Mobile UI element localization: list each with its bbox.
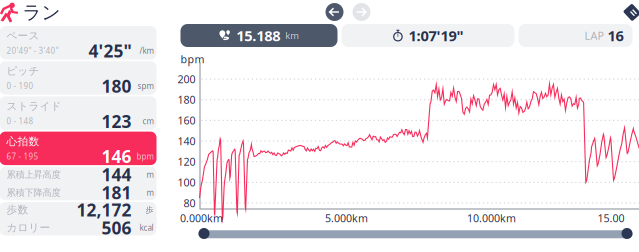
staticText: km — [285, 29, 299, 42]
staticText: 146 — [101, 145, 131, 168]
staticText: 100 — [177, 175, 195, 189]
staticText: 12,172 — [76, 198, 131, 221]
button[interactable]: LAP — [518, 24, 632, 47]
button[interactable]: Previous activity — [325, 3, 343, 21]
staticText: 累積下降高度 — [6, 187, 60, 198]
staticText: 0 - 148 — [6, 116, 33, 126]
staticText: 歩数 — [6, 203, 28, 216]
staticText: 180 — [101, 74, 131, 97]
button[interactable]: ストライド — [0, 96, 156, 130]
staticText: LAP — [584, 28, 603, 43]
staticText: ペース — [6, 29, 39, 42]
staticText: 15.00 — [597, 211, 624, 225]
staticText: ピッチ — [6, 64, 39, 77]
staticText: bpm — [136, 151, 153, 162]
button[interactable]: ペース — [0, 26, 156, 59]
button[interactable]: 歩数 — [0, 202, 156, 235]
staticText: 140 — [177, 134, 195, 148]
staticText: 4'25" — [88, 39, 131, 62]
staticText: kcal — [139, 222, 153, 233]
button[interactable]: 1:07'19" — [341, 24, 514, 47]
staticText: 123 — [101, 110, 131, 133]
staticText: bpm — [180, 52, 204, 66]
staticText: 心拍数 — [6, 135, 39, 148]
staticText: ラン — [22, 1, 60, 24]
button[interactable]: Next activity — [352, 3, 370, 21]
staticText: 0 - 190 — [6, 81, 33, 91]
staticText: m — [146, 169, 153, 180]
button[interactable]: 累積上昇高度 — [0, 167, 156, 200]
staticText: 累積上昇高度 — [6, 169, 60, 180]
button[interactable]: 15.188 — [180, 24, 337, 47]
staticText: 0.000km — [180, 211, 223, 225]
button[interactable]: ピッチ — [0, 61, 156, 95]
staticText: 15.188 — [236, 26, 280, 45]
button[interactable]: Tags — [623, 4, 639, 21]
staticText: /km — [139, 45, 153, 56]
staticText: 1:07'19" — [408, 26, 463, 45]
staticText: 80 — [183, 196, 195, 210]
staticText: 歩 — [145, 205, 153, 215]
staticText: 10.000km — [467, 211, 516, 225]
staticText: 144 — [101, 163, 131, 186]
staticText: 160 — [177, 113, 195, 127]
staticText: 200 — [177, 72, 195, 86]
staticText: 20'49" - 3'40" — [6, 45, 58, 56]
staticText: cm — [142, 116, 153, 126]
staticText: 16 — [607, 26, 623, 45]
staticText: 5.000km — [325, 211, 368, 225]
staticText: 67 - 195 — [6, 151, 38, 162]
staticText: spm — [137, 81, 153, 91]
staticText: 120 — [177, 155, 195, 169]
staticText: 181 — [101, 181, 131, 204]
staticText: ストライド — [6, 100, 61, 113]
staticText: カロリー — [6, 221, 50, 234]
staticText: 180 — [177, 93, 195, 107]
staticText: 506 — [101, 216, 131, 239]
staticText: m — [146, 187, 153, 198]
button[interactable]: 心拍数 — [0, 132, 156, 165]
